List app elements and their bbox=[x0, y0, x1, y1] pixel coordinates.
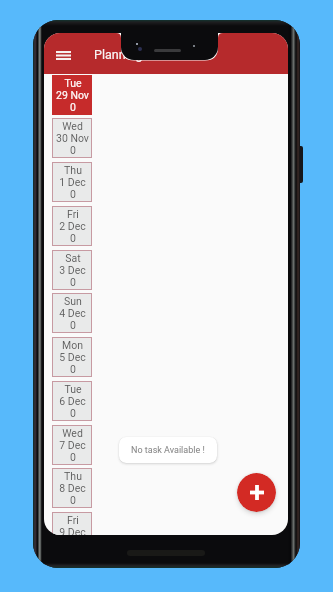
button[interactable]: Tue bbox=[52, 75, 92, 115]
button[interactable]: Mon bbox=[52, 337, 92, 377]
staticText: 0 bbox=[70, 451, 76, 463]
staticText: 0 bbox=[70, 101, 76, 113]
button[interactable]: Wed bbox=[52, 425, 92, 465]
staticText: 7 Dec bbox=[59, 439, 86, 451]
staticText: 0 bbox=[70, 407, 76, 419]
staticText: Thu bbox=[64, 470, 82, 482]
staticText: 30 Nov bbox=[56, 132, 89, 144]
staticText: 4 Dec bbox=[59, 307, 86, 319]
staticText: Tue bbox=[64, 383, 82, 395]
staticText: Sat bbox=[65, 252, 81, 264]
button[interactable]: Thu bbox=[52, 162, 92, 202]
staticText: Thu bbox=[64, 164, 82, 176]
staticText: 0 bbox=[70, 363, 76, 375]
staticText: 1 Dec bbox=[59, 176, 86, 188]
staticText: 6 Dec bbox=[59, 395, 86, 407]
staticText: Wed bbox=[62, 427, 83, 439]
staticText: Wed bbox=[62, 120, 83, 132]
button[interactable]: Wed bbox=[52, 118, 92, 158]
staticText: 2 Dec bbox=[59, 220, 86, 232]
button[interactable]: Sun bbox=[52, 293, 92, 333]
staticText: Sun bbox=[64, 295, 82, 307]
staticText: 0 bbox=[70, 188, 76, 200]
staticText: 29 Nov bbox=[56, 89, 89, 101]
staticText: Planning bbox=[94, 47, 143, 62]
staticText: 9 Dec bbox=[59, 526, 86, 535]
staticText: 0 bbox=[70, 144, 76, 156]
staticText: 0 bbox=[70, 494, 76, 506]
button[interactable]: Add task bbox=[237, 473, 276, 512]
staticText: No task Available ! bbox=[131, 445, 205, 456]
button[interactable]: Fri bbox=[52, 512, 92, 535]
staticText: 8 Dec bbox=[59, 482, 86, 494]
staticText: 3 Dec bbox=[59, 264, 86, 276]
staticText: 0 bbox=[70, 319, 76, 331]
staticText: 0 bbox=[70, 276, 76, 288]
button[interactable]: Tue bbox=[52, 381, 92, 421]
button[interactable]: Open navigation menu bbox=[48, 43, 79, 67]
staticText: Fri bbox=[67, 514, 79, 526]
staticText: 5 Dec bbox=[59, 351, 86, 363]
staticText: Mon bbox=[62, 339, 83, 351]
button[interactable]: Power button bbox=[294, 146, 303, 183]
button[interactable]: Sat bbox=[52, 250, 92, 290]
staticText: 0 bbox=[70, 232, 76, 244]
button[interactable]: Fri bbox=[52, 206, 92, 246]
button[interactable]: Thu bbox=[52, 468, 92, 508]
staticText: Fri bbox=[67, 208, 79, 220]
staticText: Tue bbox=[64, 77, 82, 89]
